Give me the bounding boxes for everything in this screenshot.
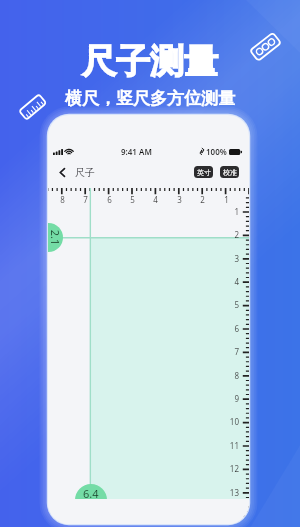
staticText: 5	[234, 299, 239, 310]
staticText: 10	[229, 416, 239, 427]
staticText: 尺子测量	[82, 40, 218, 83]
button[interactable]: 6.4	[75, 484, 107, 516]
staticText: 3	[234, 253, 239, 264]
staticText: 2.1	[48, 229, 62, 245]
staticText: 9	[234, 393, 239, 404]
staticText: 7	[234, 346, 239, 357]
staticText: 8	[60, 194, 65, 205]
staticText: 1	[224, 194, 229, 205]
staticText: 12	[229, 463, 239, 474]
staticText: 6	[107, 194, 112, 205]
staticText: 8	[234, 370, 239, 381]
staticText: 4	[153, 194, 158, 205]
staticText: 尺子	[75, 166, 95, 179]
staticText: 横尺，竖尺多方位测量	[65, 88, 235, 109]
staticText: 5	[130, 194, 135, 205]
staticText: 6.4	[83, 486, 99, 501]
staticText: 7	[83, 194, 88, 205]
button[interactable]: 校准	[220, 166, 239, 178]
staticText: 6	[234, 323, 239, 334]
staticText: 2	[234, 229, 239, 240]
button[interactable]: 2.1	[48, 223, 63, 252]
staticText: 3	[177, 194, 182, 205]
button[interactable]: Back	[53, 163, 71, 181]
staticText: 13	[229, 487, 239, 498]
staticText: 9:41 AM	[121, 146, 152, 157]
staticText: 11	[229, 440, 239, 451]
staticText: 英寸	[197, 168, 211, 177]
staticText: 2	[200, 194, 205, 205]
staticText: 100%	[206, 146, 227, 157]
staticText: 1	[234, 206, 239, 217]
staticText: 校准	[223, 168, 237, 177]
staticText: 4	[234, 276, 239, 287]
button[interactable]: 英寸	[194, 166, 213, 178]
